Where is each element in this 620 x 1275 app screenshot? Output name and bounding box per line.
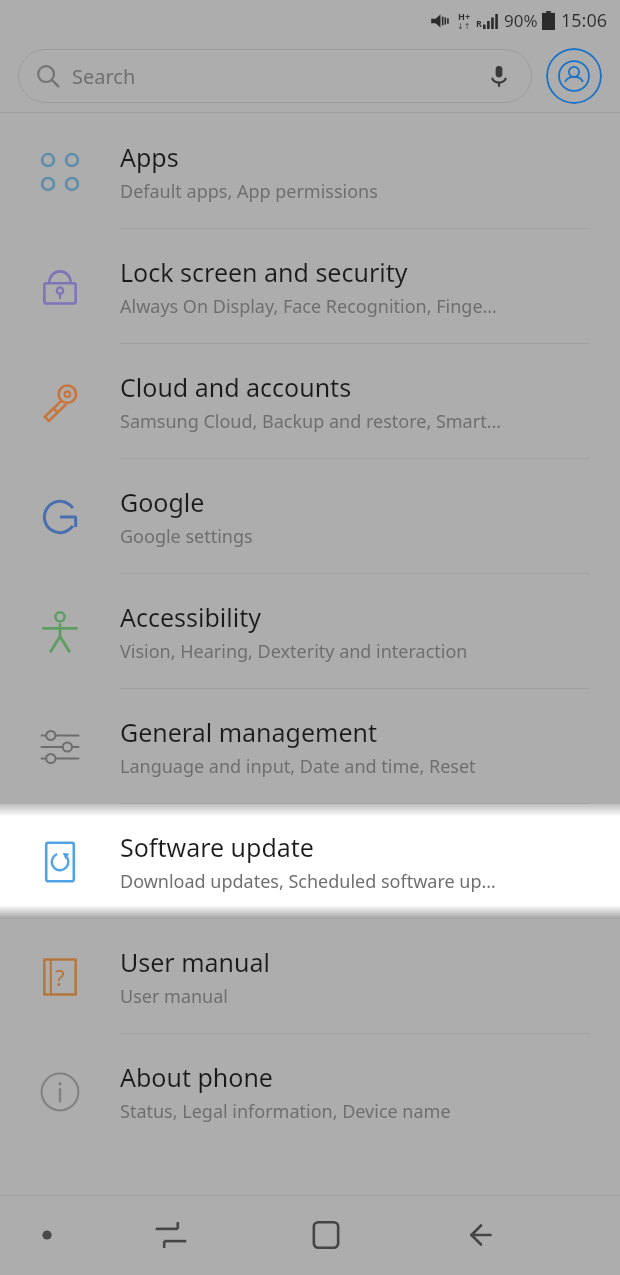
staticText: Samsung Cloud, Backup and restore, Smart…: [120, 409, 501, 434]
staticText: R: [476, 17, 482, 29]
staticText: About phone: [120, 1060, 273, 1094]
button[interactable]: About phone: [0, 1034, 620, 1149]
staticText: Status, Legal information, Device name: [120, 1099, 451, 1124]
staticText: User manual: [120, 945, 270, 979]
button[interactable]: Recents: [93, 1195, 248, 1275]
button[interactable]: ?: [0, 919, 620, 1034]
button[interactable]: Back: [403, 1195, 558, 1275]
button[interactable]: Lock screen and security: [0, 229, 620, 344]
staticText: 90%: [504, 9, 538, 32]
staticText: 15:06: [561, 8, 608, 33]
button[interactable]: Home: [248, 1195, 403, 1275]
button[interactable]: Account: [546, 48, 602, 104]
button[interactable]: Search: [18, 49, 532, 103]
button[interactable]: Voice search: [484, 61, 514, 91]
staticText: Always On Display, Face Recognition, Fin…: [120, 294, 497, 319]
staticText: Download updates, Scheduled software up…: [120, 869, 496, 894]
button[interactable]: Software update: [0, 804, 620, 919]
staticText: Language and input, Date and time, Reset: [120, 754, 476, 779]
staticText: User manual: [120, 984, 228, 1009]
staticText: Apps: [120, 140, 179, 174]
staticText: Lock screen and security: [120, 255, 408, 289]
staticText: H+: [458, 10, 471, 22]
button[interactable]: Apps: [0, 114, 620, 229]
staticText: Google: [120, 485, 205, 519]
staticText: ↓↑: [457, 22, 471, 31]
staticText: Search: [72, 63, 136, 90]
staticText: Accessibility: [120, 600, 261, 634]
staticText: Vision, Hearing, Dexterity and interacti…: [120, 639, 468, 664]
staticText: ?: [55, 962, 65, 992]
staticText: General management: [120, 715, 377, 749]
staticText: Software update: [120, 830, 314, 864]
staticText: Cloud and accounts: [120, 370, 352, 404]
staticText: Default apps, App permissions: [120, 179, 378, 204]
button[interactable]: Accessibility: [0, 574, 620, 689]
button[interactable]: Cloud and accounts: [0, 344, 620, 459]
button[interactable]: General management: [0, 689, 620, 804]
button[interactable]: Google: [0, 459, 620, 574]
staticText: Google settings: [120, 524, 253, 549]
